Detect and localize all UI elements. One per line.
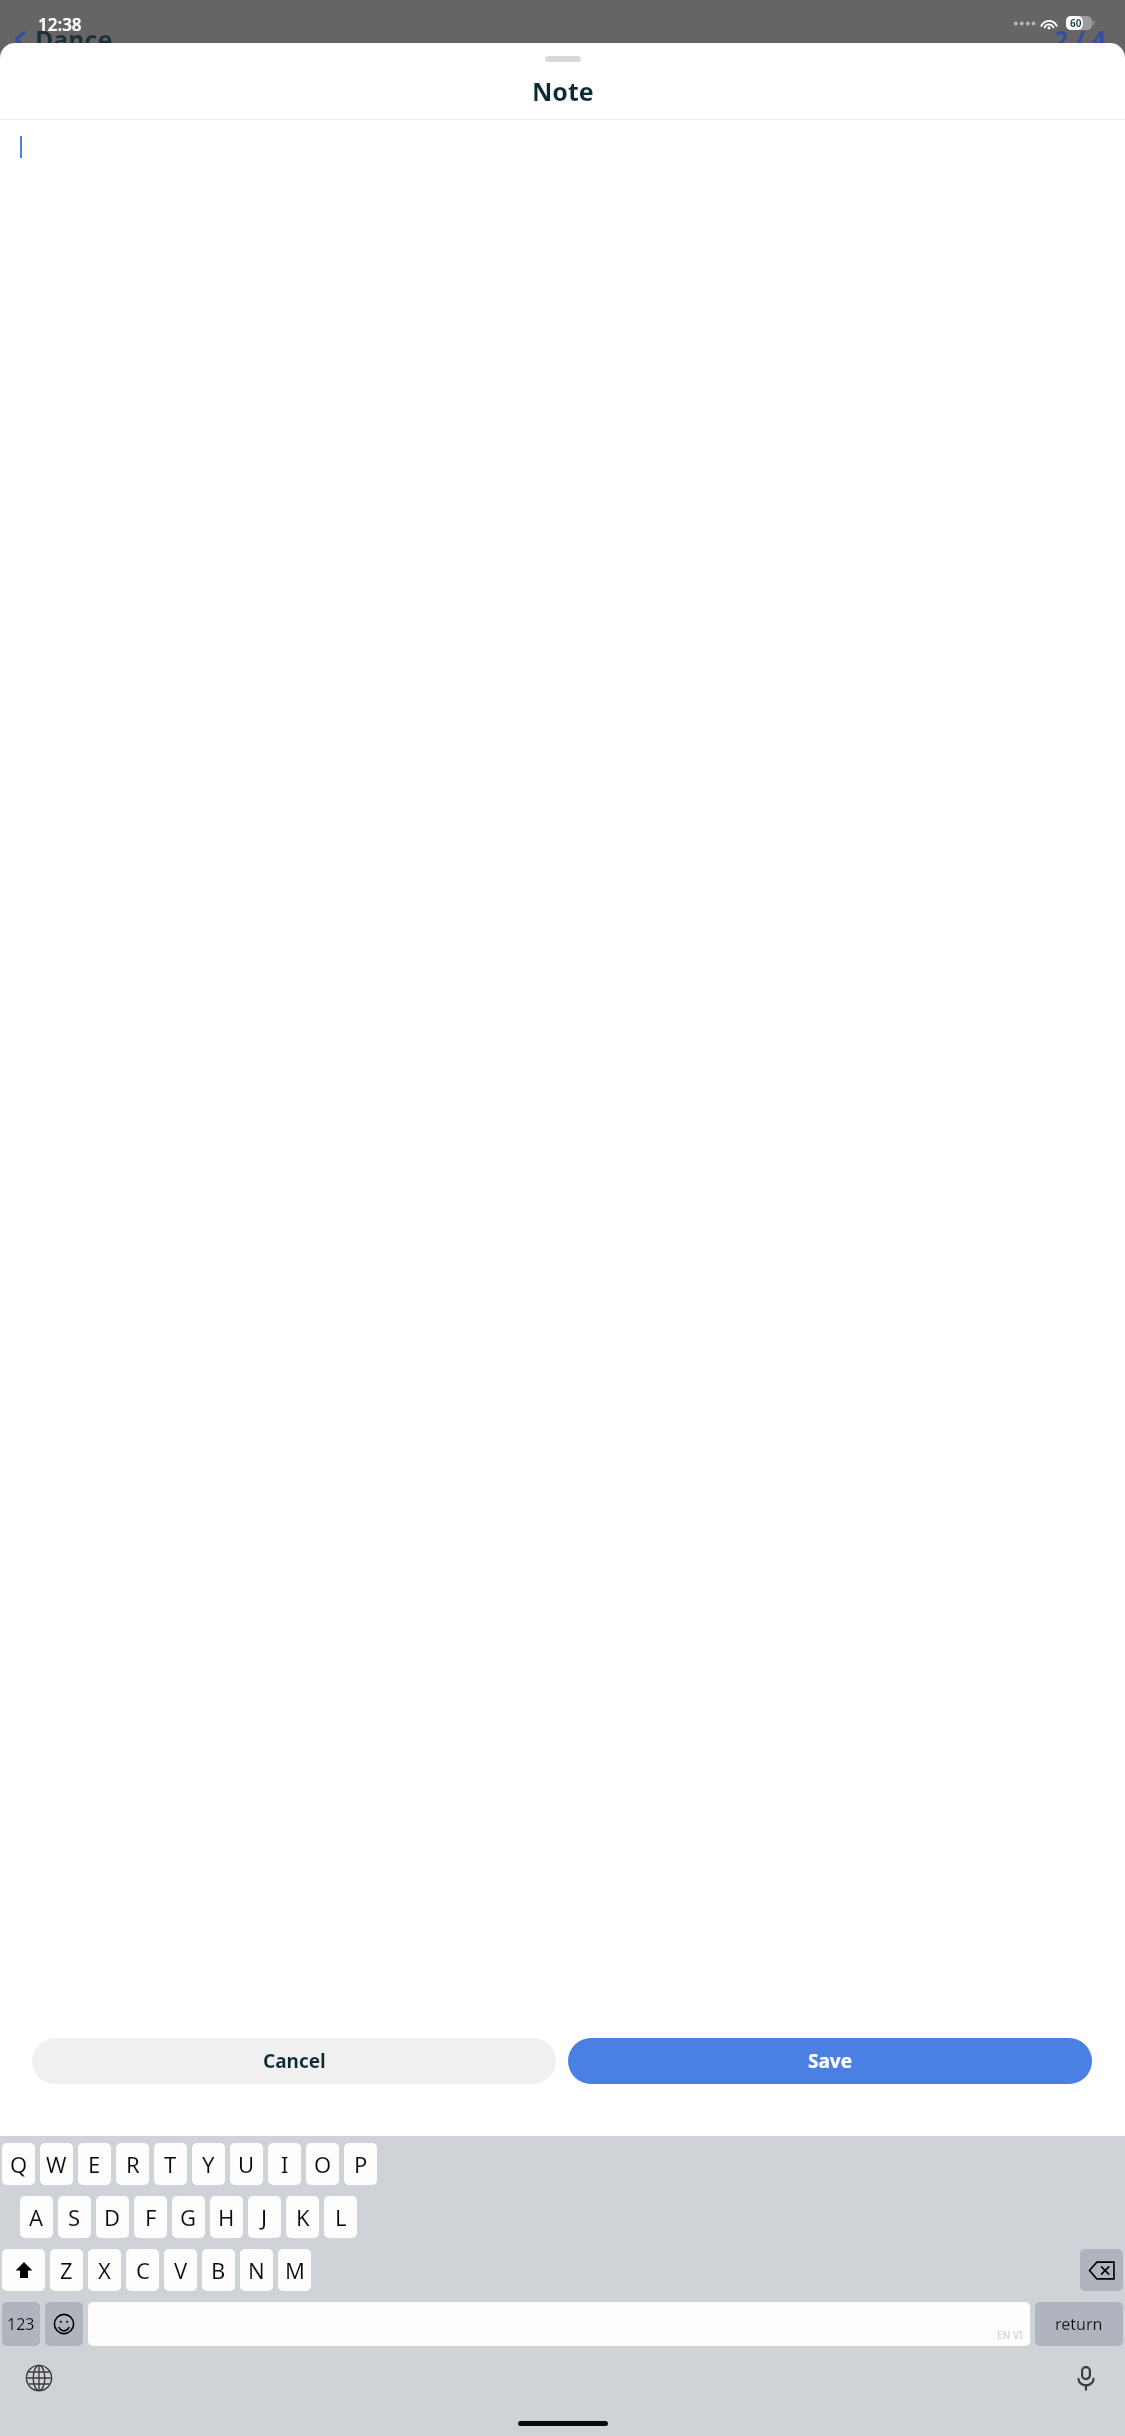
button[interactable]: Y	[192, 2143, 225, 2185]
button[interactable]: M	[278, 2249, 311, 2291]
button[interactable]: E	[78, 2143, 111, 2185]
button[interactable]: D	[96, 2196, 129, 2238]
button[interactable]: A	[20, 2196, 53, 2238]
button[interactable]: W	[40, 2143, 73, 2185]
button[interactable]: U	[230, 2143, 263, 2185]
button[interactable]: X	[88, 2249, 121, 2291]
staticText: P	[354, 2149, 368, 2179]
staticText: G	[180, 2202, 197, 2232]
staticText: R	[126, 2149, 140, 2179]
staticText: B	[211, 2255, 226, 2285]
button[interactable]: Change keyboard	[22, 2361, 56, 2395]
button[interactable]: 123	[2, 2302, 40, 2346]
staticText: D	[104, 2202, 121, 2232]
staticText: I	[281, 2149, 289, 2179]
button[interactable]: R	[116, 2143, 149, 2185]
staticText: Y	[202, 2149, 215, 2179]
button[interactable]: B	[202, 2249, 235, 2291]
button[interactable]: J	[248, 2196, 281, 2238]
staticText: return	[1055, 2313, 1103, 2335]
staticText: Save	[808, 2048, 853, 2074]
button[interactable]: Dictate	[1069, 2361, 1103, 2395]
button[interactable]: Emoji	[45, 2302, 83, 2346]
button[interactable]: Q	[2, 2143, 35, 2185]
button[interactable]: S	[58, 2196, 91, 2238]
button[interactable]: N	[240, 2249, 273, 2291]
staticText: M	[285, 2255, 305, 2285]
button[interactable]: Cancel	[0, 120, 1125, 2136]
staticText: J	[261, 2202, 268, 2232]
staticText: V	[174, 2255, 188, 2285]
button[interactable]: P	[344, 2143, 377, 2185]
staticText: 12:38	[38, 13, 82, 36]
button[interactable]: T	[154, 2143, 187, 2185]
button[interactable]: G	[172, 2196, 205, 2238]
staticText: C	[136, 2255, 150, 2285]
staticText: Dance	[35, 22, 113, 56]
button[interactable]: O	[306, 2143, 339, 2185]
staticText: T	[164, 2149, 177, 2179]
staticText: Q	[10, 2149, 28, 2179]
button[interactable]: Backspace	[1080, 2249, 1123, 2291]
staticText: N	[248, 2255, 265, 2285]
staticText: A	[29, 2202, 44, 2232]
staticText: Cancel	[263, 2048, 326, 2074]
button[interactable]: Shift	[2, 2249, 45, 2291]
button[interactable]: H	[210, 2196, 243, 2238]
staticText: EN VI	[997, 2328, 1023, 2342]
staticText: K	[296, 2202, 310, 2232]
staticText: S	[68, 2202, 81, 2232]
button[interactable]: K	[286, 2196, 319, 2238]
staticText: 2 / 4	[1054, 22, 1106, 56]
button[interactable]: L	[324, 2196, 357, 2238]
staticText: 123	[7, 2313, 35, 2335]
staticText: Z	[60, 2255, 73, 2285]
staticText: Note	[532, 74, 594, 108]
button[interactable]: F	[134, 2196, 167, 2238]
staticText: H	[218, 2202, 235, 2232]
button[interactable]: Z	[50, 2249, 83, 2291]
button[interactable]: I	[268, 2143, 301, 2185]
button[interactable]: V	[164, 2249, 197, 2291]
button[interactable]: Save	[568, 2038, 1092, 2084]
staticText: L	[335, 2202, 347, 2232]
staticText: 60	[1070, 16, 1082, 30]
staticText: F	[145, 2202, 157, 2232]
button[interactable]: return	[1035, 2302, 1123, 2346]
button[interactable]: Cancel	[32, 2038, 556, 2084]
staticText: E	[88, 2149, 101, 2179]
button[interactable]: C	[126, 2249, 159, 2291]
staticText: W	[46, 2149, 67, 2179]
staticText: U	[238, 2149, 255, 2179]
staticText: X	[98, 2255, 111, 2285]
staticText: O	[314, 2149, 332, 2179]
